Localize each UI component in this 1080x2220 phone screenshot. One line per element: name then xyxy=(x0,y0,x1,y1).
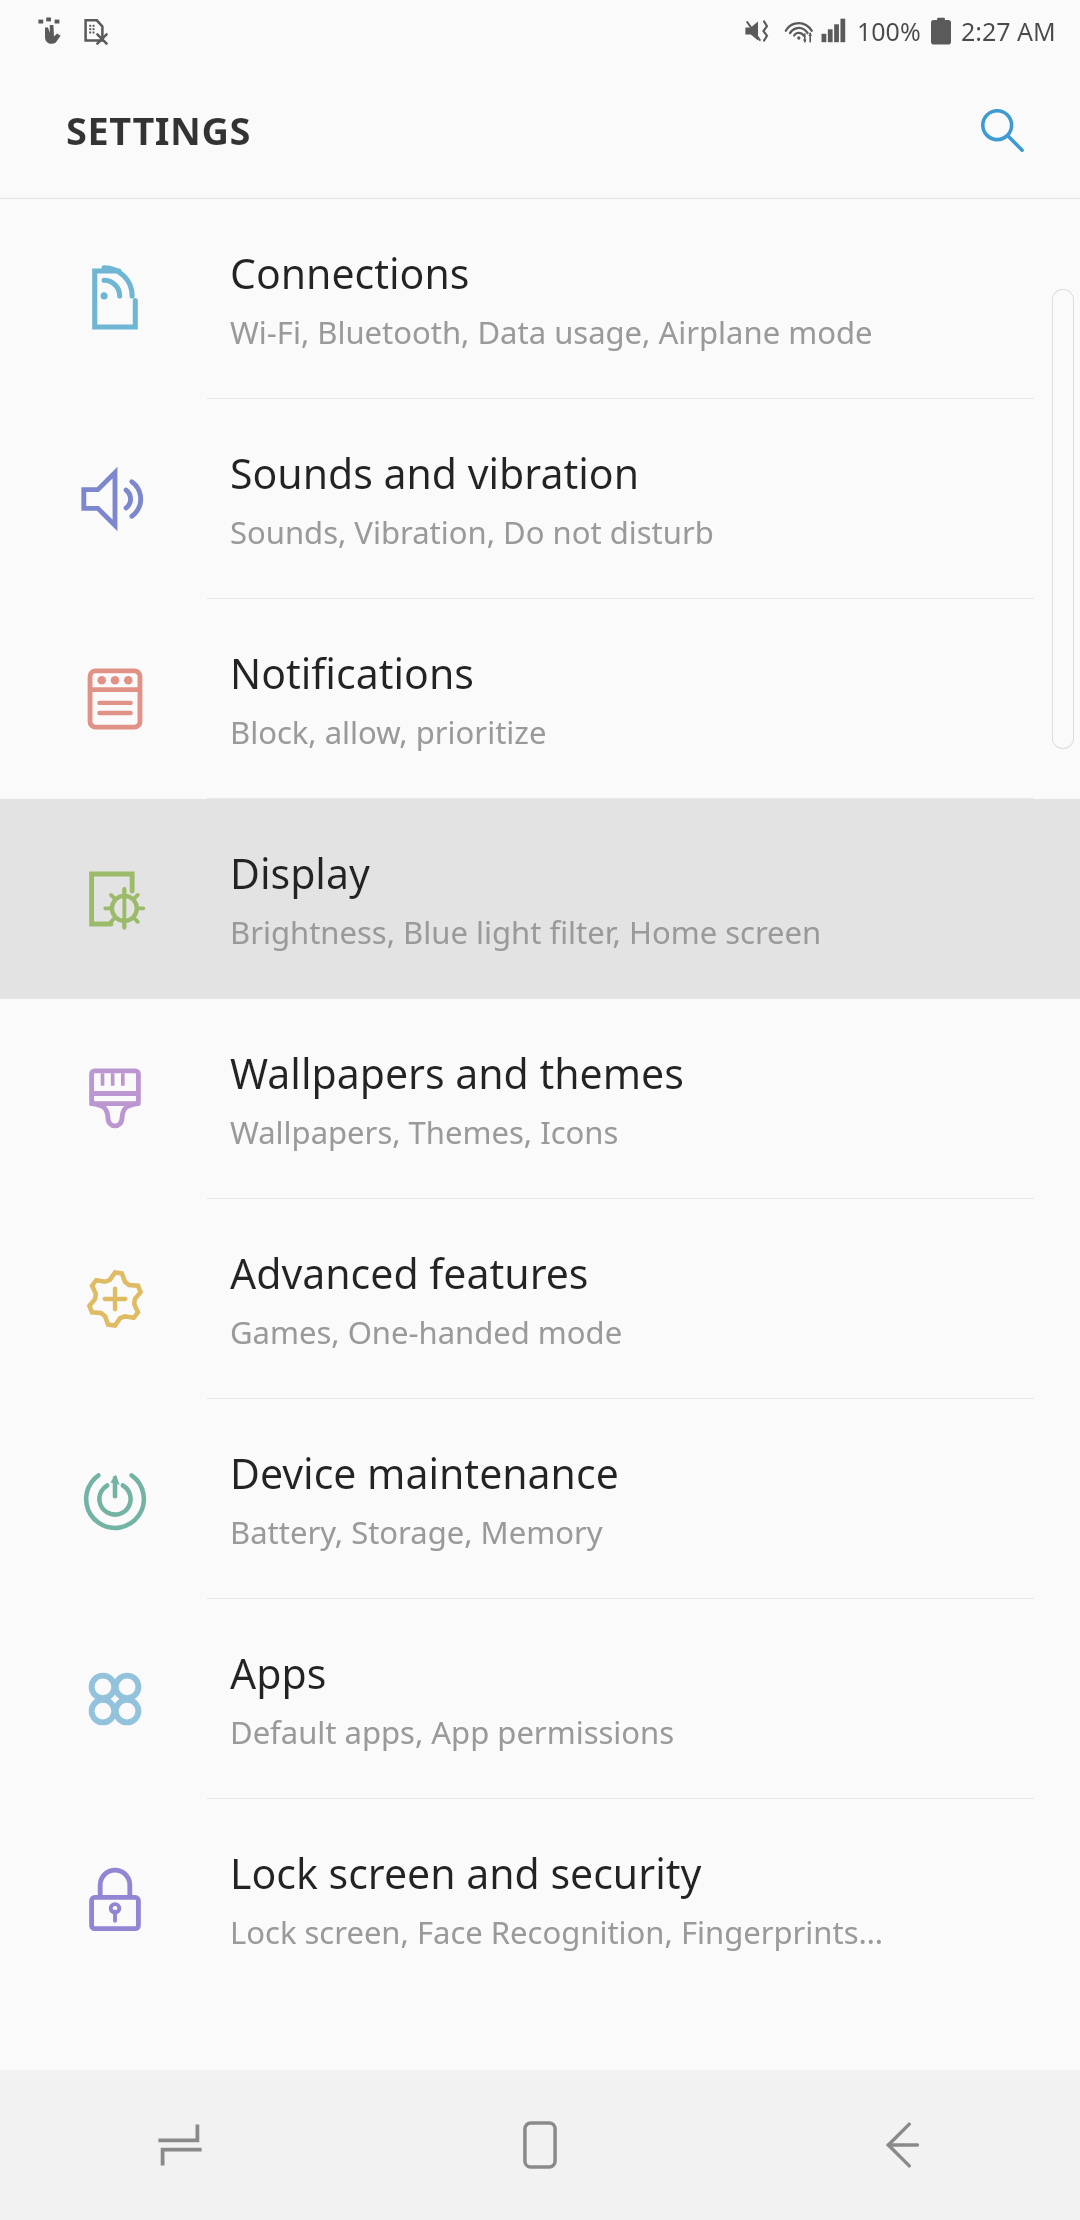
staticText: Lock screen and security xyxy=(230,1845,702,1901)
staticText: Lock screen, Face Recognition, Fingerpri… xyxy=(230,1911,884,1953)
staticText: Games, One-handed mode xyxy=(230,1311,623,1353)
staticText: Brightness, Blue light filter, Home scre… xyxy=(230,911,822,953)
staticText: Wi-Fi, Bluetooth, Data usage, Airplane m… xyxy=(230,311,873,353)
staticText: Battery, Storage, Memory xyxy=(230,1511,603,1553)
button[interactable]: Notifications xyxy=(0,599,1080,799)
staticText: Sounds and vibration xyxy=(230,445,639,501)
staticText: Block, allow, prioritize xyxy=(230,711,547,753)
button[interactable]: Advanced features xyxy=(0,1199,1080,1399)
staticText: Connections xyxy=(230,245,470,301)
button[interactable]: Apps xyxy=(0,1599,1080,1799)
staticText: Sounds, Vibration, Do not disturb xyxy=(230,511,714,553)
button[interactable]: Device maintenance xyxy=(0,1399,1080,1599)
button[interactable]: Recent apps xyxy=(0,2070,360,2220)
button[interactable]: Lock screen and security xyxy=(0,1799,1080,1999)
staticText: Apps xyxy=(230,1645,327,1701)
staticText: 2:27 AM xyxy=(961,14,1056,48)
button[interactable]: Display xyxy=(0,799,1080,999)
staticText: 100% xyxy=(857,14,921,48)
button[interactable]: Home xyxy=(360,2070,720,2220)
button[interactable]: Connections xyxy=(0,199,1080,399)
staticText: Device maintenance xyxy=(230,1445,619,1501)
staticText: Default apps, App permissions xyxy=(230,1711,675,1753)
button[interactable]: Wallpapers and themes xyxy=(0,999,1080,1199)
button[interactable]: Sounds and vibration xyxy=(0,399,1080,599)
staticText: Notifications xyxy=(230,645,474,701)
staticText: Wallpapers, Themes, Icons xyxy=(230,1111,619,1153)
staticText: Display xyxy=(230,845,370,901)
button[interactable]: Search xyxy=(968,96,1036,164)
staticText: Advanced features xyxy=(230,1245,589,1301)
staticText: SETTINGS xyxy=(66,104,251,156)
staticText: Wallpapers and themes xyxy=(230,1045,684,1101)
button[interactable]: Back xyxy=(720,2070,1080,2220)
